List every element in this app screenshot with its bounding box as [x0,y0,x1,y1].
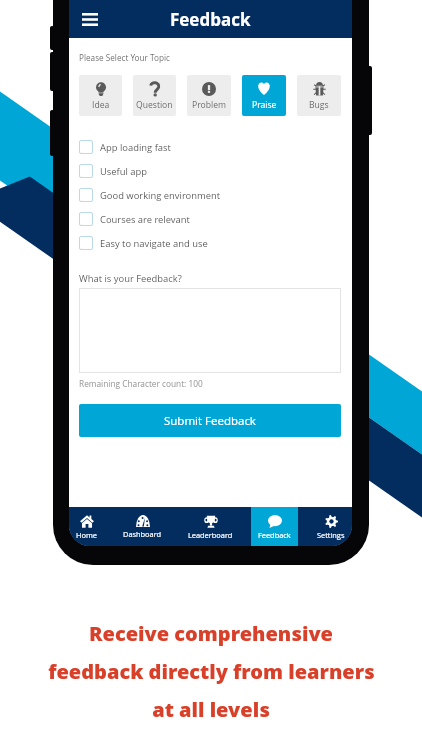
staticText: App loading fast [100,141,171,154]
button[interactable]: Home [69,507,104,546]
button[interactable]: Problem [187,75,231,116]
staticText: Dashboard [123,529,162,539]
staticText: Idea [92,99,110,111]
button[interactable]: Leaderboard [181,507,240,546]
staticText: Submit Feedback [164,413,256,429]
staticText: Receive comprehensive [89,620,333,647]
staticText: Feedback [170,8,251,31]
staticText: feedback directly from learners [48,658,375,685]
staticText: Easy to navigate and use [100,237,208,250]
button[interactable]: Idea [79,75,122,116]
staticText: Leaderboard [188,530,233,540]
button[interactable]: Menu [76,5,104,33]
staticText: Question [136,99,173,111]
staticText: Settings [317,530,345,540]
button[interactable]: Question [133,75,176,116]
button[interactable]: Settings [310,507,352,546]
staticText: Courses are relevant [100,213,190,226]
button[interactable]: Praise [242,75,286,116]
staticText: Praise [252,99,277,111]
staticText: Feedback [258,530,291,540]
button[interactable]: App loading fast [79,135,341,159]
staticText: Bugs [309,99,329,111]
button[interactable]: Bugs [297,75,341,116]
staticText: Good working environment [100,189,221,202]
staticText: Useful app [100,165,148,178]
staticText: at all levels [152,696,270,723]
button[interactable]: Easy to navigate and use [79,231,341,255]
staticText: Please Select Your Topic [79,52,170,63]
staticText: Problem [192,99,226,111]
button[interactable]: Feedback [251,507,298,546]
staticText: What is your Feedback? [79,272,182,285]
staticText: Home [76,530,97,540]
button[interactable]: Good working environment [79,183,341,207]
button[interactable]: Useful app [79,159,341,183]
button[interactable]: Courses are relevant [79,207,341,231]
staticText: Remaining Character count: 100 [79,378,203,389]
button[interactable]: Submit Feedback [79,404,341,437]
button[interactable]: Dashboard [116,507,169,546]
button[interactable] [79,288,341,373]
